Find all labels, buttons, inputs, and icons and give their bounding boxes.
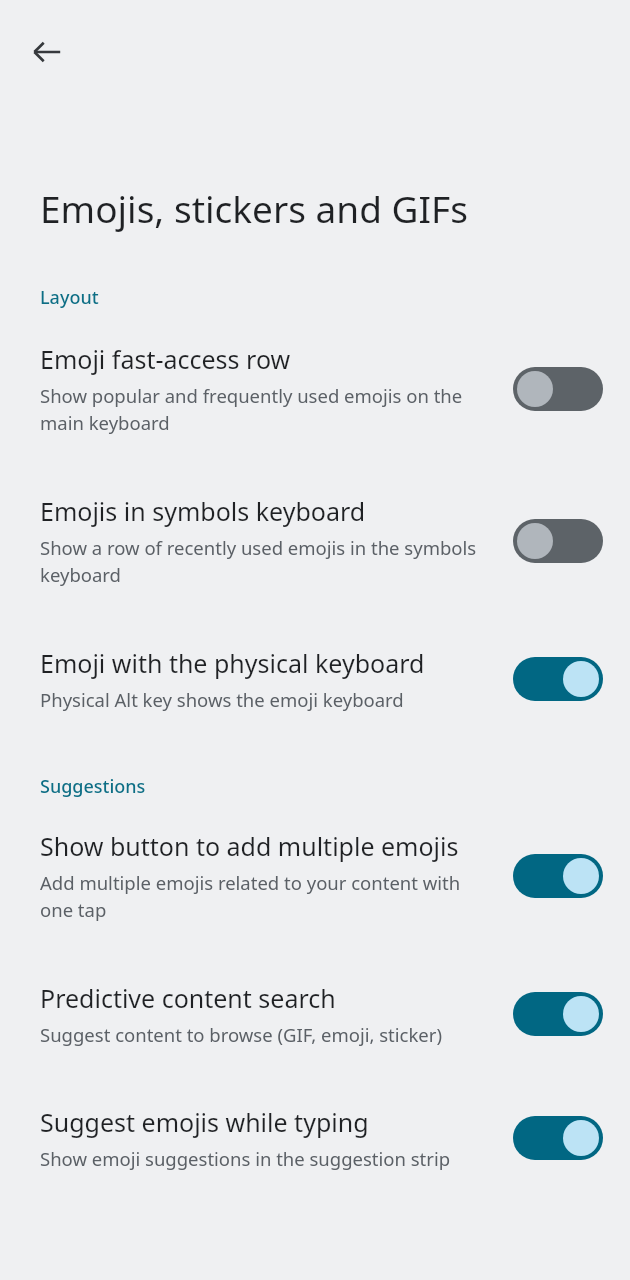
staticText: Emojis, stickers and GIFs: [40, 183, 468, 233]
staticText: Layout: [40, 285, 99, 310]
staticText: Suggestions: [40, 774, 146, 799]
staticText: Emoji fast-access row: [40, 342, 291, 376]
staticText: Suggest content to browse (GIF, emoji, s…: [40, 1022, 442, 1047]
button[interactable]: Show button to add multiple emojis: [513, 854, 603, 898]
button[interactable]: Emojis in symbols keyboard: [0, 494, 630, 588]
button[interactable]: Predictive content search: [0, 981, 630, 1047]
staticText: Show a row of recently used emojis in th…: [40, 535, 482, 588]
button[interactable]: Back: [17, 22, 77, 82]
staticText: Show popular and frequently used emojis …: [40, 383, 482, 436]
button[interactable]: Emojis in symbols keyboard: [513, 519, 603, 563]
button[interactable]: Predictive content search: [513, 992, 603, 1036]
staticText: Physical Alt key shows the emoji keyboar…: [40, 687, 404, 712]
staticText: Show emoji suggestions in the suggestion…: [40, 1146, 451, 1171]
staticText: Emoji with the physical keyboard: [40, 646, 425, 680]
button[interactable]: Show button to add multiple emojis: [0, 829, 630, 923]
staticText: Suggest emojis while typing: [40, 1105, 369, 1139]
staticText: Add multiple emojis related to your cont…: [40, 870, 482, 923]
staticText: Show button to add multiple emojis: [40, 829, 459, 863]
button[interactable]: Suggest emojis while typing: [513, 1116, 603, 1160]
button[interactable]: Emoji fast-access row: [0, 342, 630, 436]
staticText: Emojis in symbols keyboard: [40, 494, 366, 528]
button[interactable]: Emoji with the physical keyboard: [513, 657, 603, 701]
button[interactable]: Suggest emojis while typing: [0, 1105, 630, 1171]
staticText: Predictive content search: [40, 981, 336, 1015]
button[interactable]: Emoji with the physical keyboard: [0, 646, 630, 712]
button[interactable]: Emoji fast-access row: [513, 367, 603, 411]
